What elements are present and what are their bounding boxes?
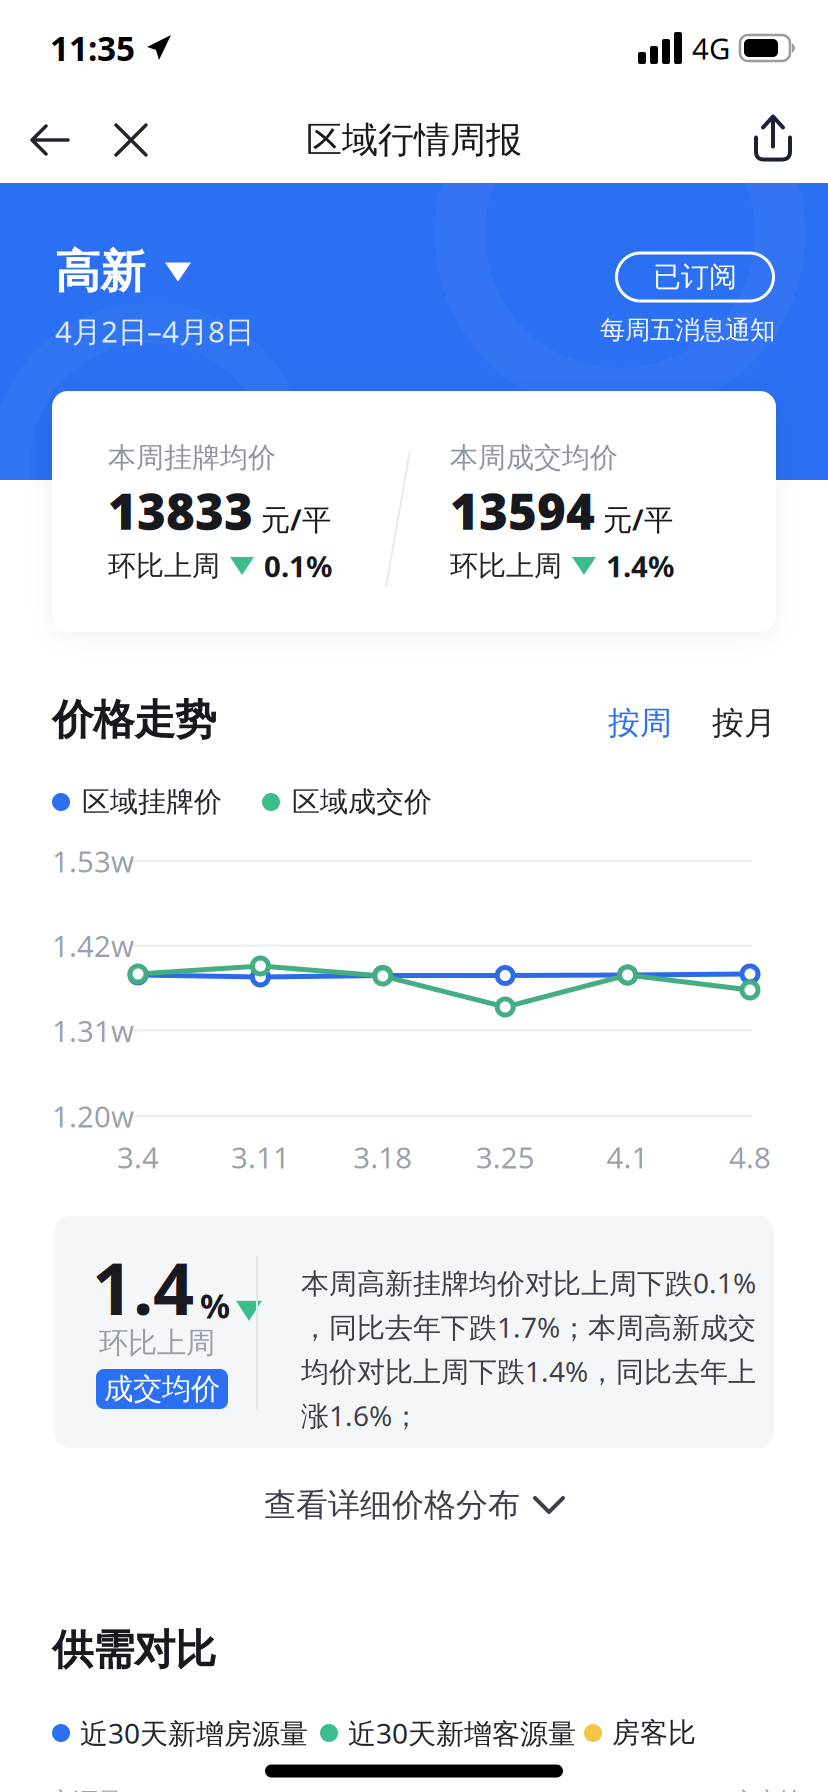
staticText: 1.31w: [52, 1011, 134, 1050]
staticText: 13594: [450, 478, 595, 543]
staticText: 1.53w: [52, 841, 134, 880]
staticText: 1.42w: [52, 926, 134, 965]
staticText: 3.4: [117, 1137, 159, 1176]
staticText: 本周挂牌均价: [108, 441, 276, 475]
staticText: 元/平: [603, 499, 673, 538]
staticText: 近30天新增客源量: [348, 1714, 576, 1752]
staticText: 价格走势: [52, 695, 216, 745]
button[interactable]: Share: [745, 110, 801, 166]
staticText: 4.8: [729, 1137, 771, 1176]
staticText: 1.4: [92, 1239, 194, 1335]
staticText: 区域行情周报: [306, 118, 522, 162]
button[interactable]: Back: [22, 112, 78, 168]
staticText: 环比上周: [450, 549, 562, 583]
staticText: %: [200, 1283, 230, 1328]
staticText: 元/平: [261, 499, 331, 538]
staticText: 近30天新增房源量: [80, 1714, 308, 1752]
staticText: 每周五消息通知: [600, 314, 775, 345]
staticText: 本周成交均价: [450, 441, 618, 475]
staticText: 3.11: [231, 1137, 290, 1176]
staticText: 区域成交价: [292, 785, 432, 819]
staticText: 查看详细价格分布: [264, 1485, 520, 1525]
staticText: 环比上周: [108, 549, 220, 583]
staticText: 1.20w: [52, 1096, 134, 1135]
staticText: 13833: [108, 478, 253, 543]
button[interactable]: Close: [105, 114, 157, 166]
staticText: 0.1%: [264, 546, 332, 585]
staticText: 环比上周: [99, 1325, 215, 1361]
staticText: 本周高新挂牌均价对比上周下跌0.1%: [301, 1264, 756, 1301]
staticText: 4G: [692, 28, 730, 67]
staticText: 高新: [55, 244, 145, 300]
button[interactable]: 查看详细价格分布: [264, 1485, 564, 1525]
button[interactable]: 选择区域: [55, 244, 191, 300]
staticText: 按周: [608, 703, 672, 743]
staticText: 按月: [712, 703, 776, 743]
button[interactable]: 按月: [712, 703, 776, 743]
button[interactable]: 按周: [608, 703, 672, 743]
staticText: 供需对比: [52, 1625, 216, 1675]
staticText: 均价对比上周下跌1.4%，同比去年上: [301, 1352, 756, 1390]
staticText: 涨1.6%；: [301, 1397, 420, 1434]
staticText: 房客比: [612, 1716, 696, 1750]
staticText: 4月2日–4月8日: [55, 311, 254, 350]
staticText: 已订阅: [653, 260, 737, 294]
staticText: 成交均价: [104, 1371, 220, 1407]
staticText: 11:35: [50, 26, 135, 70]
staticText: 3.25: [476, 1137, 535, 1176]
staticText: 房源量: [47, 1786, 122, 1792]
staticText: 4.1: [607, 1137, 649, 1176]
staticText: 房客比: [730, 1786, 805, 1792]
staticText: 1.4%: [606, 546, 674, 585]
staticText: 区域挂牌价: [82, 785, 222, 819]
staticText: 3.18: [353, 1137, 412, 1176]
button[interactable]: 已订阅: [616, 253, 773, 301]
staticText: ，同比去年下跌1.7%；本周高新成交: [301, 1308, 756, 1345]
